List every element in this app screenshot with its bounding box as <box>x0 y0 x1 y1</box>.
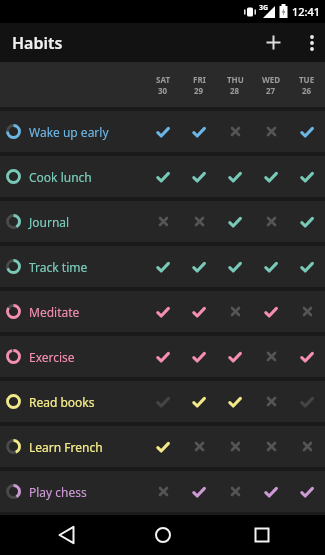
button[interactable] <box>181 111 217 152</box>
button[interactable] <box>289 336 325 377</box>
button[interactable]: Journal <box>0 201 325 242</box>
button[interactable] <box>145 381 181 422</box>
button[interactable] <box>181 426 217 467</box>
button[interactable]: Meditate <box>0 291 325 332</box>
staticText: 30 <box>158 85 168 96</box>
button[interactable]: Exercise <box>0 336 325 377</box>
button[interactable] <box>289 111 325 152</box>
staticText: 26 <box>302 85 312 96</box>
staticText: WED <box>262 74 281 85</box>
button[interactable] <box>253 336 289 377</box>
button[interactable] <box>145 336 181 377</box>
button[interactable] <box>145 201 181 242</box>
staticText: Wake up early <box>29 124 109 140</box>
button[interactable] <box>217 426 253 467</box>
button[interactable] <box>145 291 181 332</box>
button[interactable]: Learn French <box>0 426 325 467</box>
button[interactable]: Cook lunch <box>0 156 325 197</box>
staticText: 27 <box>266 85 276 96</box>
staticText: 12:41 <box>292 4 321 19</box>
button[interactable] <box>289 201 325 242</box>
button[interactable] <box>145 156 181 197</box>
staticText: Learn French <box>29 439 103 455</box>
button[interactable]: Wake up early <box>0 111 325 152</box>
button[interactable] <box>289 426 325 467</box>
staticText: TUE <box>299 74 315 85</box>
button[interactable] <box>253 111 289 152</box>
staticText: Play chess <box>29 484 87 500</box>
button[interactable] <box>289 156 325 197</box>
button[interactable] <box>145 246 181 287</box>
button[interactable] <box>253 471 289 512</box>
button[interactable] <box>109 515 217 555</box>
button[interactable] <box>145 471 181 512</box>
staticText: SAT <box>156 74 170 85</box>
button[interactable] <box>217 246 253 287</box>
button[interactable] <box>217 156 253 197</box>
staticText: FRI <box>193 74 206 85</box>
button[interactable] <box>253 23 293 62</box>
button[interactable] <box>181 246 217 287</box>
staticText: Journal <box>29 214 70 230</box>
button[interactable] <box>217 381 253 422</box>
button[interactable] <box>217 471 253 512</box>
staticText: THU <box>227 74 244 85</box>
staticText: Meditate <box>29 304 80 320</box>
staticText: Track time <box>29 259 88 275</box>
staticText: 28 <box>230 85 240 96</box>
staticText: Read books <box>29 394 95 410</box>
button[interactable] <box>217 336 253 377</box>
button[interactable] <box>289 291 325 332</box>
button[interactable] <box>289 471 325 512</box>
staticText: Cook lunch <box>29 169 92 185</box>
button[interactable] <box>253 291 289 332</box>
staticText: Habits <box>12 32 63 54</box>
button[interactable] <box>217 291 253 332</box>
button[interactable] <box>217 201 253 242</box>
button[interactable] <box>145 426 181 467</box>
button[interactable] <box>253 381 289 422</box>
button[interactable]: Read books <box>0 381 325 422</box>
staticText: Exercise <box>29 349 75 365</box>
button[interactable] <box>181 291 217 332</box>
button[interactable] <box>253 201 289 242</box>
button[interactable] <box>181 336 217 377</box>
button[interactable] <box>0 515 109 555</box>
staticText: 29 <box>194 85 204 96</box>
button[interactable] <box>181 381 217 422</box>
button[interactable] <box>253 246 289 287</box>
button[interactable] <box>253 426 289 467</box>
staticText: 3G <box>259 3 269 13</box>
button[interactable]: Track time <box>0 246 325 287</box>
button[interactable] <box>253 156 289 197</box>
button[interactable]: Play chess <box>0 471 325 512</box>
button[interactable] <box>181 471 217 512</box>
button[interactable] <box>299 23 325 62</box>
button[interactable] <box>289 246 325 287</box>
button[interactable] <box>145 111 181 152</box>
button[interactable] <box>181 201 217 242</box>
button[interactable] <box>181 156 217 197</box>
button[interactable] <box>289 381 325 422</box>
button[interactable] <box>217 111 253 152</box>
button[interactable] <box>217 515 325 555</box>
